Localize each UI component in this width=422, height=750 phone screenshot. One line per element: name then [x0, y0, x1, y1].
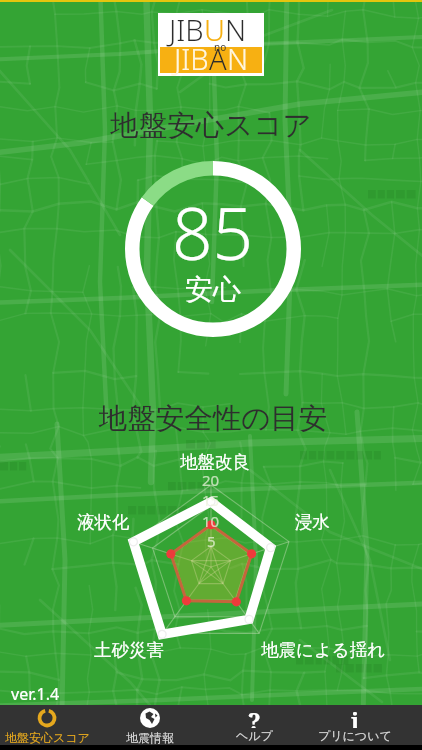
- staticText: ver.1.4: [11, 683, 60, 705]
- staticText: 土砂災害: [94, 639, 164, 661]
- staticText: N: [227, 39, 249, 76]
- staticText: 安心: [185, 272, 241, 307]
- staticText: ヘルプ: [236, 728, 273, 743]
- staticText: ?: [248, 705, 261, 728]
- staticText: U: [204, 13, 225, 49]
- staticText: 地盤安心スコア: [5, 730, 90, 745]
- staticText: 地盤安全性の目安: [2, 401, 422, 437]
- button[interactable]: 地盤安心スコア: [0, 705, 99, 745]
- staticText: i: [351, 705, 360, 728]
- staticText: JIB: [169, 13, 204, 49]
- staticText: 浸水: [295, 511, 330, 533]
- staticText: 5: [207, 531, 216, 551]
- button[interactable]: ?: [202, 705, 306, 745]
- staticText: A: [209, 39, 227, 76]
- staticText: 液状化: [77, 511, 130, 533]
- staticText: 地盤安心スコア: [0, 108, 422, 144]
- staticText: 地震情報: [126, 730, 174, 745]
- staticText: 地震による揺れ: [261, 639, 386, 661]
- staticText: 15: [202, 490, 220, 510]
- button[interactable]: 地震情報: [98, 705, 202, 745]
- staticText: 85: [172, 184, 254, 281]
- staticText: 地盤改良: [180, 451, 250, 473]
- staticText: プリについて: [318, 728, 392, 743]
- staticText: JIB: [174, 39, 209, 76]
- button[interactable]: i: [303, 705, 407, 745]
- staticText: no: [214, 40, 227, 54]
- staticText: 20: [202, 470, 220, 490]
- staticText: N: [225, 13, 247, 49]
- staticText: 10: [202, 511, 220, 531]
- button[interactable]: JIBUN no JIBAN: [158, 13, 264, 76]
